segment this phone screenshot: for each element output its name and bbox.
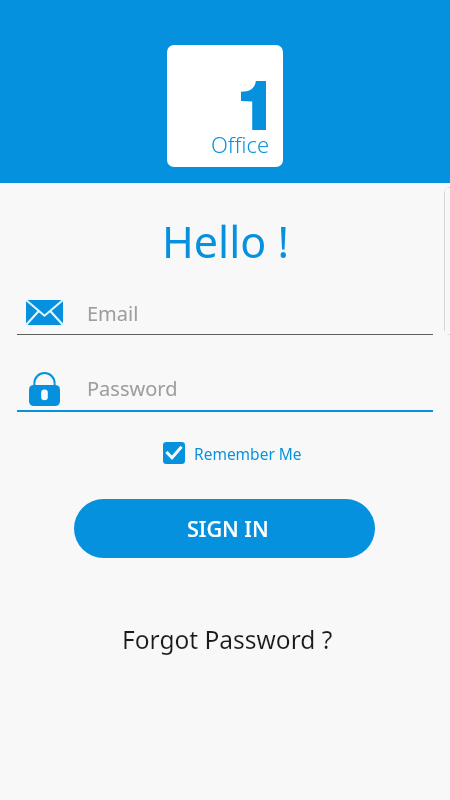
staticText: Forgot Password ? bbox=[122, 623, 333, 656]
staticText: Office bbox=[211, 129, 270, 159]
staticText: Password bbox=[87, 375, 178, 402]
staticText: Email bbox=[87, 300, 139, 327]
staticText: Hello ! bbox=[162, 212, 290, 271]
staticText: Remember Me bbox=[194, 443, 302, 464]
button[interactable]: Password bbox=[17, 369, 433, 412]
button[interactable]: SIGN IN bbox=[74, 499, 375, 558]
button[interactable]: Email bbox=[17, 292, 433, 335]
other: Email bbox=[26, 300, 63, 325]
button[interactable]: Forgot Password ? bbox=[118, 618, 336, 660]
other: 1Office logo bbox=[167, 45, 283, 167]
staticText: SIGN IN bbox=[187, 514, 269, 543]
other: Password bbox=[29, 371, 60, 406]
button[interactable]: Remember Me bbox=[163, 442, 302, 464]
